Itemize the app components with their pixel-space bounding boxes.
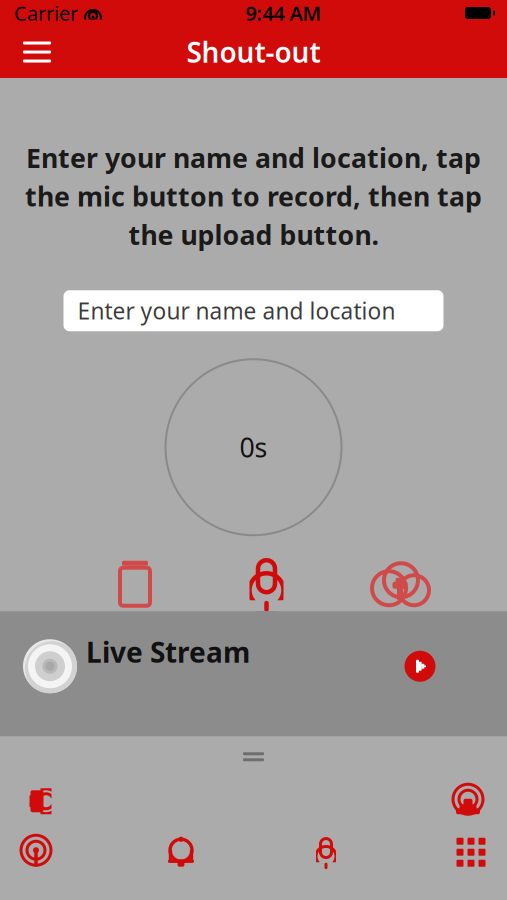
button[interactable]: Broadcast: [6, 831, 66, 873]
staticText: the upload button.: [128, 217, 378, 252]
staticText: Shout-out: [186, 33, 320, 71]
button[interactable]: Menu: [10, 29, 64, 75]
staticText: 9:44 AM: [245, 0, 321, 26]
button[interactable]: Alerts: [151, 831, 211, 873]
button[interactable]: Upload: [363, 555, 437, 611]
staticText: the mic button to record, then tap: [25, 178, 482, 214]
staticText: Enter your name and location, tap: [26, 140, 481, 175]
button[interactable]: Microphone: [296, 831, 356, 873]
button[interactable]: AirPlay: [441, 781, 495, 821]
staticText: Enter your name and location: [77, 296, 395, 326]
button[interactable]: Keypad: [441, 831, 501, 873]
staticText: Carrier: [14, 0, 78, 26]
button[interactable]: Speaker: [12, 781, 66, 821]
staticText: 0s: [239, 429, 267, 465]
button[interactable]: Play: [395, 641, 445, 691]
button[interactable]: Delete recording: [100, 555, 170, 611]
button[interactable]: Record: [231, 555, 301, 611]
staticText: Live Stream: [86, 633, 250, 670]
